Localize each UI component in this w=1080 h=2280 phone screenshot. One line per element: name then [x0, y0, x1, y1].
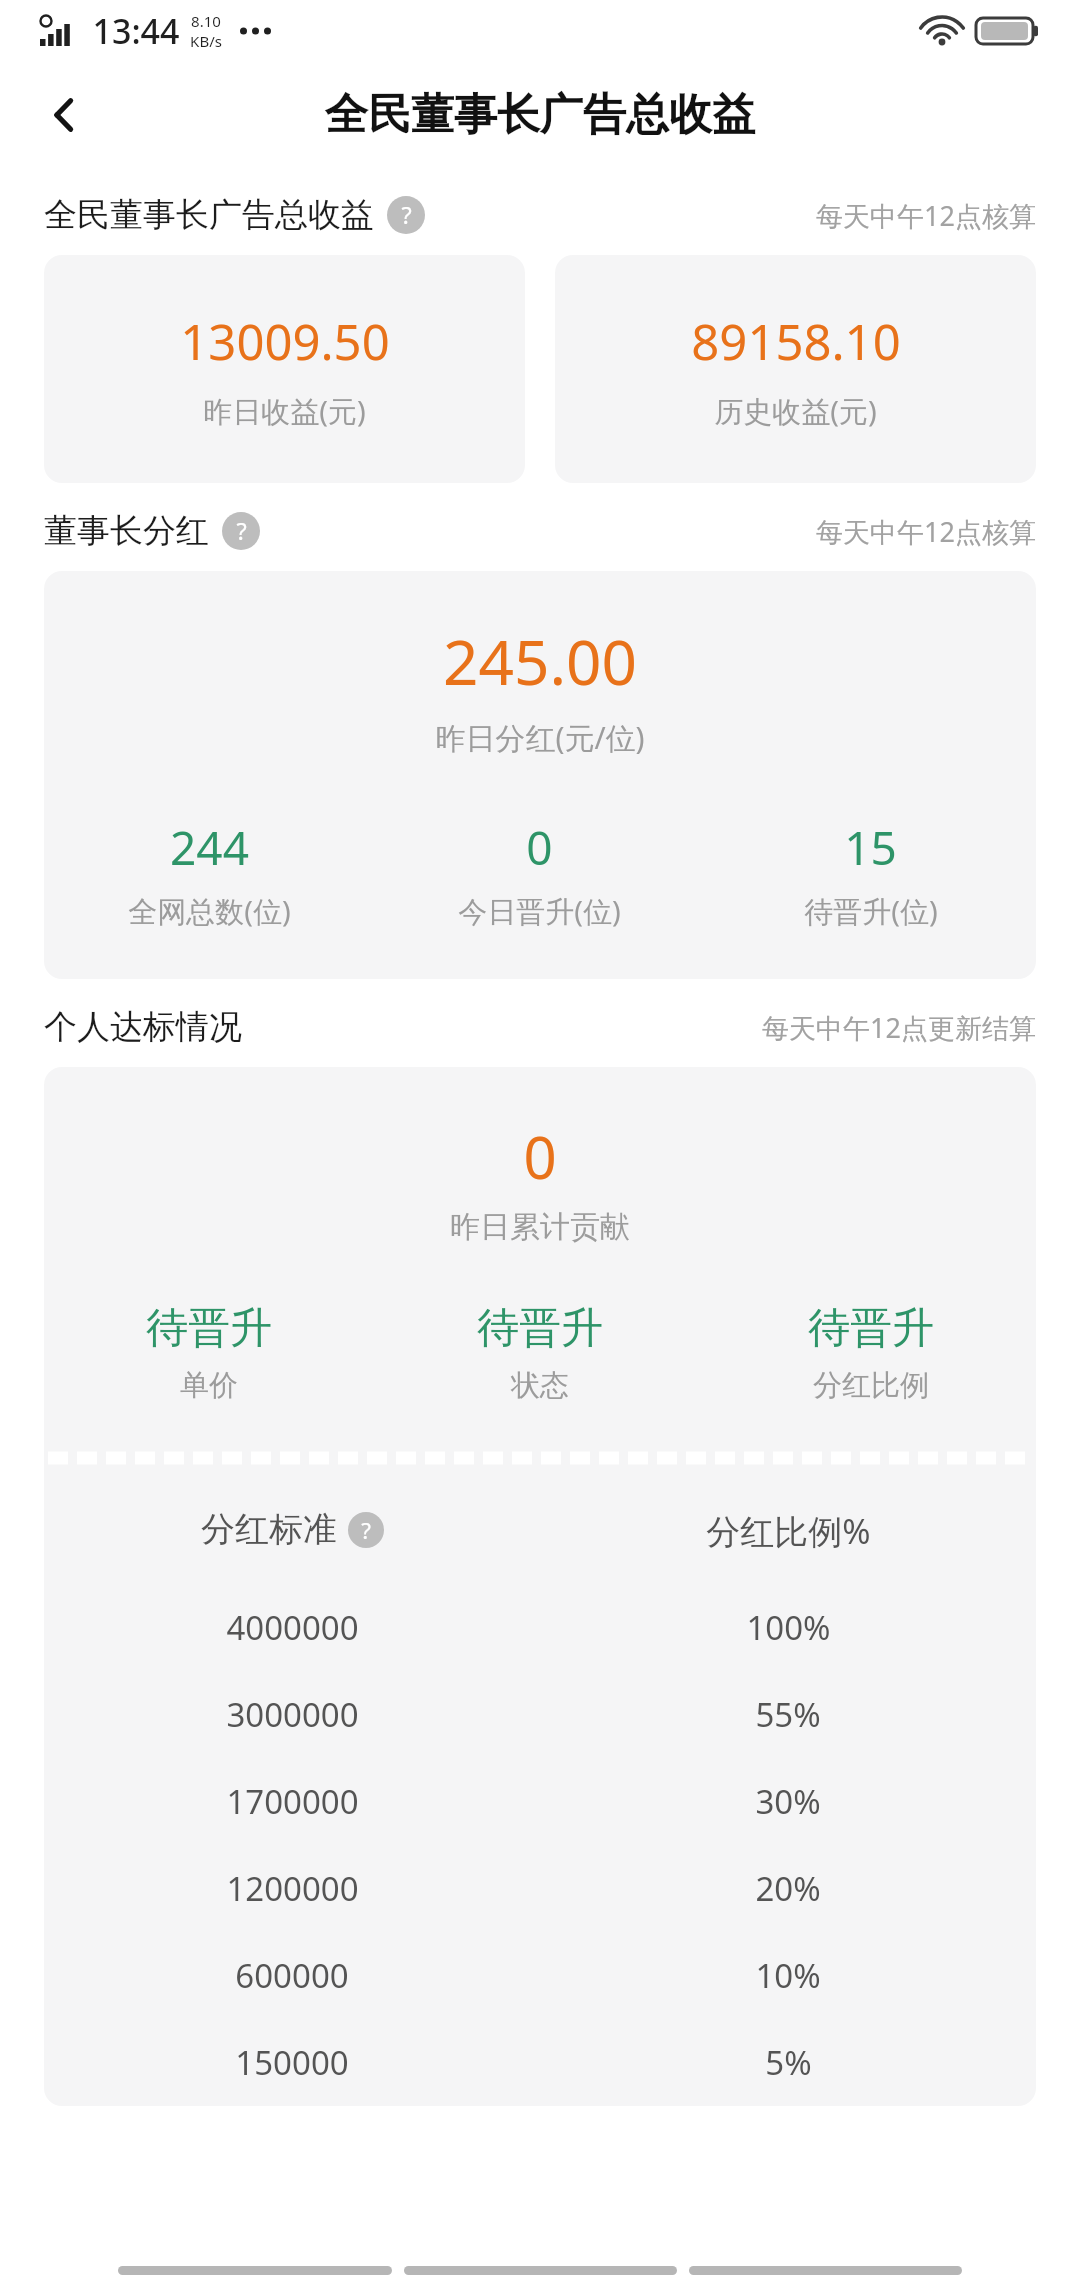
staticText: 分红标准 [201, 1508, 337, 1551]
button[interactable]: Help [387, 196, 425, 234]
button[interactable]: Help [222, 512, 260, 550]
staticText: 13009.50 [180, 308, 390, 375]
button[interactable]: 13009.50 [44, 255, 525, 483]
staticText: 4000000 [226, 1605, 359, 1650]
staticText: ? [401, 199, 412, 231]
staticText: 历史收益(元) [714, 391, 877, 431]
staticText: 全民董事长广告总收益 [44, 194, 374, 236]
staticText: 状态 [511, 1367, 569, 1404]
staticText: 30% [755, 1779, 821, 1824]
staticText: 单价 [180, 1367, 238, 1404]
staticText: 今日晋升(位) [458, 891, 621, 931]
staticText: 245.00 [443, 619, 637, 703]
staticText: 董事长分红 [44, 510, 209, 552]
staticText: 150000 [235, 2040, 349, 2085]
staticText: KB/s [190, 31, 222, 51]
button[interactable]: Navigation [118, 2266, 392, 2275]
staticText: 8.10 [191, 11, 221, 31]
staticText: 分红比例 [813, 1367, 929, 1404]
staticText: 0 [526, 816, 553, 879]
staticText: 89158.10 [691, 308, 901, 375]
button[interactable]: Back [24, 73, 108, 157]
staticText: 待晋升 [146, 1302, 272, 1355]
staticText: 昨日收益(元) [203, 391, 366, 431]
staticText: 15 [844, 816, 897, 879]
button[interactable]: Navigation [404, 2266, 677, 2275]
staticText: 13:44 [92, 8, 180, 54]
staticText: 待晋升(位) [804, 891, 938, 931]
staticText: 待晋升 [477, 1302, 603, 1355]
staticText: 5% [765, 2040, 812, 2085]
staticText: 600000 [235, 1953, 349, 1998]
staticText: 每天中午12点核算 [816, 513, 1036, 550]
staticText: 个人达标情况 [44, 1006, 242, 1048]
staticText: 55% [755, 1692, 821, 1737]
staticText: 昨日累计贡献 [450, 1208, 630, 1246]
button[interactable]: 245.00 [44, 571, 1036, 979]
staticText: 昨日分红(元/位) [435, 717, 645, 758]
staticText: 244 [170, 816, 249, 879]
button[interactable]: 0 [44, 1067, 1036, 1450]
staticText: 每天中午12点更新结算 [762, 1009, 1036, 1046]
staticText: ? [361, 1515, 371, 1545]
staticText: 待晋升 [808, 1302, 934, 1355]
staticText: 20% [755, 1866, 821, 1911]
staticText: 0 [523, 1117, 557, 1196]
staticText: 全网总数(位) [128, 891, 291, 931]
staticText: 全民董事长广告总收益 [325, 88, 755, 142]
button[interactable]: Navigation [689, 2266, 962, 2275]
staticText: 100% [746, 1605, 831, 1650]
staticText: 3000000 [226, 1692, 359, 1737]
button[interactable]: Help [348, 1512, 384, 1548]
staticText: 每天中午12点核算 [816, 197, 1036, 234]
staticText: 1200000 [226, 1866, 359, 1911]
staticText: 1700000 [226, 1779, 359, 1824]
staticText: 分红比例% [706, 1508, 871, 1554]
button[interactable]: 89158.10 [555, 255, 1036, 483]
staticText: 10% [755, 1953, 821, 1998]
staticText: ? [236, 515, 247, 547]
